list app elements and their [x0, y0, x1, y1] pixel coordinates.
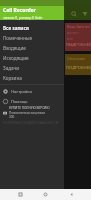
button[interactable]: Задачи: [0, 63, 64, 73]
staticText: Все записи: [3, 25, 29, 31]
button[interactable]: Filter: [79, 8, 90, 19]
button[interactable]: Ваш бизнес: [65, 23, 91, 51]
button[interactable]: Корзина: [0, 73, 64, 83]
staticText: записи 0, размер 0 байт: [3, 15, 43, 20]
staticText: ПОДРОБНЕЕ: [66, 65, 91, 71]
button[interactable]: Входящие: [0, 43, 64, 53]
staticText: Call Recorder: [3, 7, 36, 14]
button[interactable]: Описание: [65, 54, 91, 75]
staticText: КУПИТЕ ПОЛНУЮ ВЕРСИЮ: [9, 106, 50, 110]
staticText: ПОДРОБНЕЕ: [66, 42, 91, 48]
button[interactable]: Помеченные: [0, 33, 64, 43]
button[interactable]: Recents: [15, 189, 26, 200]
button[interactable]: Исходящие: [0, 53, 64, 63]
button[interactable]: Search: [68, 8, 79, 19]
button[interactable]: Все записи: [0, 23, 64, 33]
staticText: Настройки: [11, 89, 32, 94]
staticText: Помощь: [11, 99, 28, 104]
staticText: всё: [67, 36, 73, 41]
button[interactable]: Back: [66, 189, 77, 200]
staticText: Входящие: [3, 45, 26, 51]
button[interactable]: Home: [40, 189, 51, 200]
staticText: Исходящие: [3, 55, 29, 61]
staticText: Задачи: [3, 65, 20, 71]
button[interactable]: ПОЛИТИКА КОНФИДЕНЦИАЛЬНОСТИ: [3, 121, 59, 125]
staticText: сам: [67, 42, 74, 47]
staticText: Корзина: [3, 75, 22, 81]
button[interactable]: Помощь: [0, 96, 64, 106]
staticText: 300: [9, 115, 15, 119]
button[interactable]: Настройки: [0, 86, 64, 96]
staticText: Ваш бизнес: [67, 24, 90, 29]
staticText: Помеченные: [3, 35, 33, 41]
staticText: Описание: [67, 56, 86, 61]
staticText: Пожизненная лицензия: [9, 111, 45, 115]
staticText: делает: [67, 30, 79, 35]
button[interactable]: Пожизненная лицензия: [0, 111, 64, 119]
